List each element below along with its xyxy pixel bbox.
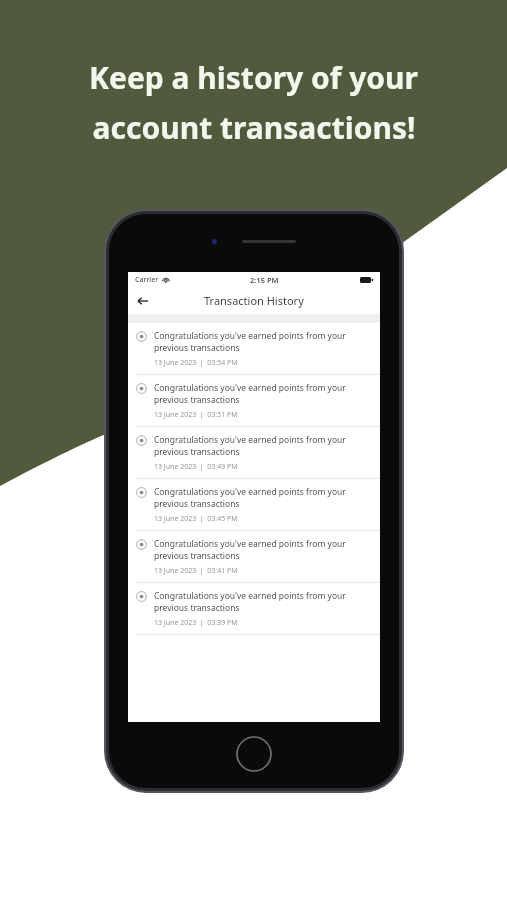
staticText: 13 June 2023 | 03:41 PM [154,566,238,576]
staticText: Congratulations you've earned points fro… [154,434,370,458]
staticText: Congratulations you've earned points fro… [154,538,370,562]
button[interactable]: Congratulations you've earned points fro… [128,583,380,635]
button[interactable]: Congratulations you've earned points fro… [128,375,380,427]
staticText: account transactions! [92,107,416,148]
staticText: Congratulations you've earned points fro… [154,382,370,406]
button[interactable]: Congratulations you've earned points fro… [128,479,380,531]
staticText: 13 June 2023 | 03:51 PM [154,410,238,420]
button[interactable]: Congratulations you've earned points fro… [128,427,380,479]
staticText: 13 June 2023 | 03:45 PM [154,514,238,524]
button[interactable]: Congratulations you've earned points fro… [128,323,380,375]
staticText: Carrier [135,275,159,285]
staticText: Congratulations you've earned points fro… [154,590,370,614]
staticText: 13 June 2023 | 03:49 PM [154,462,238,472]
staticText: Congratulations you've earned points fro… [154,330,370,354]
staticText: 13 June 2023 | 03:54 PM [154,358,238,368]
staticText: Transaction History [204,293,304,308]
staticText: Keep a history of your [89,57,418,98]
button[interactable]: Congratulations you've earned points fro… [128,531,380,583]
staticText: Congratulations you've earned points fro… [154,486,370,510]
staticText: 13 June 2023 | 03:39 PM [154,618,238,628]
staticText: 2:15 PM [250,275,279,285]
button[interactable]: Back [133,291,153,311]
